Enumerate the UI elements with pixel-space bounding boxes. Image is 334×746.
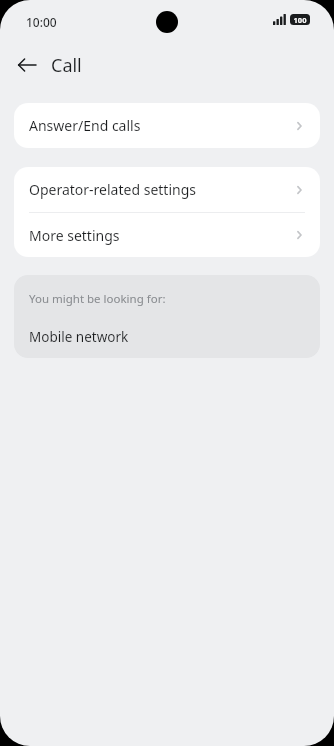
staticText: More settings bbox=[29, 226, 120, 245]
button[interactable]: Mobile network bbox=[14, 323, 320, 351]
staticText: Operator-related settings bbox=[29, 180, 196, 199]
staticText: 100 bbox=[290, 15, 310, 25]
staticText: Mobile network bbox=[29, 328, 129, 346]
button[interactable]: More settings bbox=[14, 213, 320, 257]
staticText: Answer/End calls bbox=[29, 116, 141, 135]
button[interactable]: Operator-related settings bbox=[14, 167, 320, 212]
button[interactable]: Back bbox=[12, 50, 42, 80]
staticText: You might be looking for: bbox=[29, 291, 166, 307]
button[interactable]: Answer/End calls bbox=[14, 103, 320, 148]
staticText: Call bbox=[51, 53, 82, 78]
staticText: 10:00 bbox=[26, 14, 57, 30]
